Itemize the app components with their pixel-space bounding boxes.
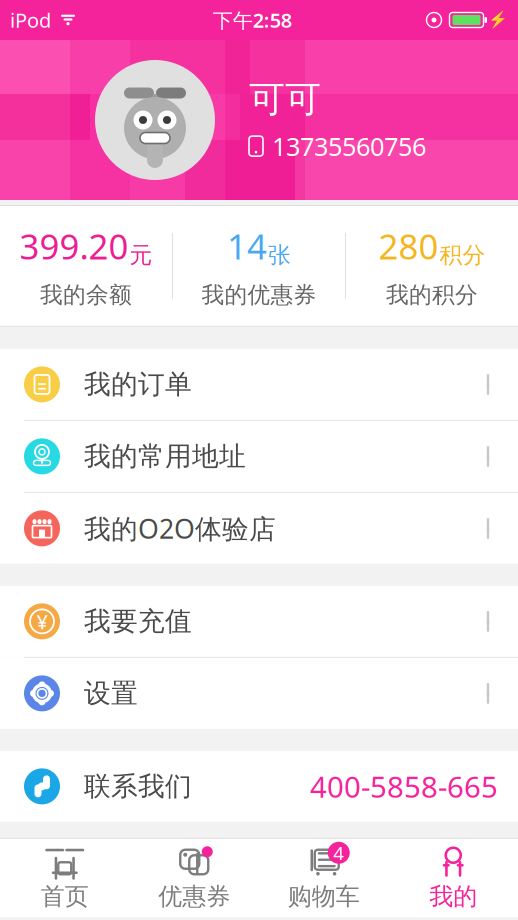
button[interactable]: 首页: [0, 839, 129, 917]
button[interactable]: 399.20: [0, 205, 172, 327]
staticText: 元: [129, 241, 152, 269]
button[interactable]: 设置: [0, 658, 518, 729]
staticText: 我的O2O体验店: [84, 511, 276, 546]
staticText: ¥: [36, 608, 47, 635]
staticText: 我的订单: [84, 368, 192, 401]
button[interactable]: 我的: [388, 839, 518, 917]
staticText: 400-5858-665: [310, 767, 498, 806]
button[interactable]: 我的O2O体验店: [0, 493, 518, 564]
staticText: 首页: [41, 882, 89, 911]
staticText: 14: [227, 223, 267, 269]
staticText: 优惠券: [158, 882, 230, 911]
staticText: ⚡: [488, 11, 508, 29]
staticText: 280: [378, 223, 438, 269]
staticText: 我要充值: [84, 605, 192, 638]
staticText: 设置: [84, 677, 138, 710]
staticText: 积分: [439, 241, 485, 269]
button[interactable]: 280: [346, 205, 518, 327]
staticText: 可可: [249, 77, 321, 121]
staticText: 4: [333, 840, 344, 865]
staticText: 联系我们: [84, 770, 192, 803]
button[interactable]: ¥: [0, 586, 518, 657]
button[interactable]: 联系我们: [0, 751, 518, 822]
staticText: 我的常用地址: [84, 440, 246, 473]
staticText: 我的优惠券: [201, 281, 316, 309]
staticText: 399.20: [19, 223, 128, 269]
staticText: 购物车: [288, 882, 360, 911]
button[interactable]: 4: [259, 839, 388, 917]
staticText: 我的: [429, 882, 477, 911]
staticText: 我的积分: [386, 281, 478, 309]
staticText: 张: [268, 241, 291, 269]
button[interactable]: 14: [173, 205, 345, 327]
staticText: iPod: [10, 7, 51, 33]
button[interactable]: 优惠券: [129, 839, 259, 917]
button[interactable]: 我的常用地址: [0, 421, 518, 492]
staticText: 下午2:58: [213, 7, 292, 33]
staticText: 13735560756: [272, 129, 426, 163]
staticText: 我的余额: [40, 281, 132, 309]
button[interactable]: 我的订单: [0, 349, 518, 420]
